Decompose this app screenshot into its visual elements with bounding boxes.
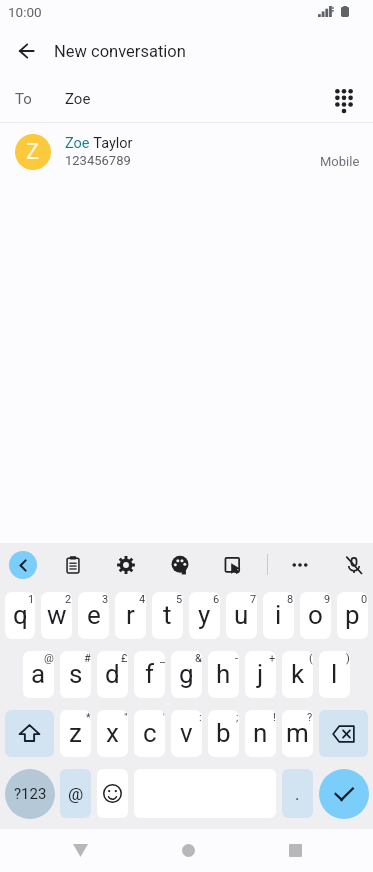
staticText: "	[124, 711, 128, 724]
staticText: '	[163, 711, 165, 724]
button[interactable]: Emoji	[97, 769, 128, 818]
staticText: Zoe	[65, 135, 90, 152]
staticText: ;	[236, 711, 239, 724]
staticText: @	[68, 784, 84, 804]
button[interactable]: One-handed mode	[218, 550, 248, 580]
staticText: f	[145, 659, 155, 689]
staticText: o	[308, 600, 323, 630]
staticText: j	[257, 659, 264, 689]
staticText: q	[13, 600, 28, 630]
staticText: z	[69, 718, 82, 748]
button[interactable]: Expand toolbar	[9, 551, 37, 579]
staticText: @	[44, 652, 54, 665]
button[interactable]: .	[282, 769, 313, 818]
button[interactable]: Home	[164, 829, 212, 872]
button[interactable]: e	[78, 592, 109, 639]
staticText: ?	[307, 711, 313, 724]
staticText: m	[286, 718, 309, 748]
staticText: p	[345, 600, 360, 630]
button[interactable]: d	[97, 651, 128, 698]
button[interactable]: k	[282, 651, 313, 698]
button[interactable]: Dialpad	[324, 79, 364, 119]
staticText: d	[105, 659, 120, 689]
button[interactable]: f	[134, 651, 165, 698]
staticText: .	[295, 784, 300, 804]
staticText: 0	[361, 593, 368, 606]
button[interactable]: @	[60, 769, 91, 818]
button[interactable]: p	[337, 592, 368, 639]
staticText: *	[86, 711, 91, 724]
staticText: -	[235, 652, 239, 665]
button[interactable]: w	[41, 592, 72, 639]
staticText: 8	[287, 593, 294, 606]
staticText: +	[269, 652, 276, 665]
button[interactable]: Z	[0, 123, 373, 180]
button[interactable]: Recents	[271, 829, 319, 872]
button[interactable]: l	[319, 651, 350, 698]
staticText: _	[160, 652, 165, 665]
button[interactable]: Clipboard	[58, 550, 88, 580]
button[interactable]: j	[245, 651, 276, 698]
staticText: :	[199, 711, 202, 724]
button[interactable]: o	[300, 592, 331, 639]
button[interactable]: n	[245, 710, 276, 757]
staticText: Mobile	[320, 154, 360, 169]
staticText: 4	[139, 593, 146, 606]
button[interactable]: Settings	[111, 550, 141, 580]
staticText: 3	[102, 593, 109, 606]
button[interactable]: More options	[285, 550, 315, 580]
button[interactable]: q	[5, 592, 35, 639]
staticText: k	[291, 659, 305, 689]
staticText: s	[69, 659, 83, 689]
button[interactable]: Voice input off	[339, 550, 369, 580]
button[interactable]: ?123	[5, 769, 55, 819]
staticText: New conversation	[54, 42, 186, 61]
staticText: y	[198, 600, 211, 630]
staticText: 9	[324, 593, 331, 606]
button[interactable]: a	[23, 651, 54, 698]
staticText: (	[309, 652, 313, 665]
staticText: ?123	[14, 785, 47, 803]
button[interactable]: Shift	[5, 710, 54, 757]
staticText: To	[15, 90, 32, 108]
button[interactable]: Back	[56, 829, 104, 872]
staticText: b	[216, 718, 231, 748]
button[interactable]: b	[208, 710, 239, 757]
staticText: a	[31, 659, 46, 689]
button[interactable]: h	[208, 651, 239, 698]
button[interactable]: Theme	[165, 550, 195, 580]
button[interactable]: Back	[6, 31, 46, 71]
staticText: #	[84, 652, 91, 665]
staticText: Zoe	[65, 90, 91, 108]
staticText: l	[331, 659, 338, 689]
staticText: 6	[213, 593, 220, 606]
button[interactable]: t	[152, 592, 183, 639]
button[interactable]: z	[60, 710, 91, 757]
staticText: 2	[65, 593, 72, 606]
button[interactable]: v	[171, 710, 202, 757]
staticText: u	[234, 600, 249, 630]
button[interactable]: c	[134, 710, 165, 757]
button[interactable]: x	[97, 710, 128, 757]
staticText: 5	[176, 593, 183, 606]
staticText: g	[179, 659, 194, 689]
button[interactable]: s	[60, 651, 91, 698]
button[interactable]: y	[189, 592, 220, 639]
button[interactable]: Backspace	[319, 710, 368, 757]
staticText: Z	[26, 139, 40, 165]
button[interactable]: r	[115, 592, 146, 639]
button[interactable]: Send	[319, 769, 369, 819]
staticText: x	[106, 718, 119, 748]
staticText: Taylor	[90, 135, 133, 152]
staticText: &	[195, 652, 202, 665]
staticText: e	[87, 600, 101, 630]
staticText: c	[143, 718, 157, 748]
button[interactable]: u	[226, 592, 257, 639]
staticText: )	[346, 652, 350, 665]
staticText: £	[121, 652, 128, 665]
button[interactable]: g	[171, 651, 202, 698]
button[interactable]: i	[263, 592, 294, 639]
staticText: r	[126, 600, 135, 630]
button[interactable]: m	[282, 710, 313, 757]
